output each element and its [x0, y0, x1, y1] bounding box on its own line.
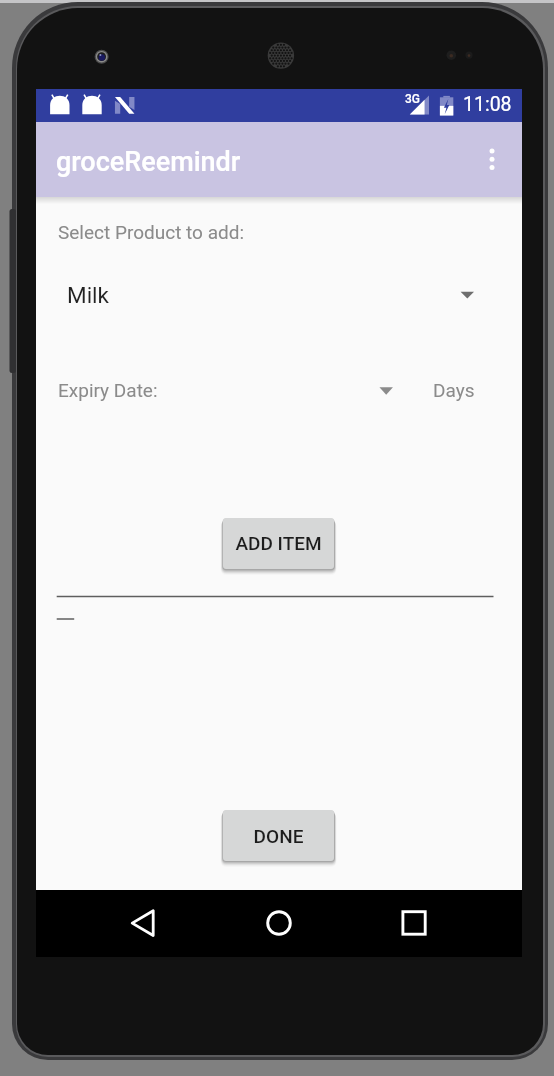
staticText: Milk — [67, 282, 109, 308]
staticText: Expiry Date: — [58, 379, 158, 401]
staticText: Days — [433, 379, 475, 401]
staticText: 3G — [405, 92, 420, 106]
button[interactable]: Back — [110, 890, 176, 957]
button[interactable]: More options — [466, 122, 518, 197]
staticText: 11:08 — [463, 93, 512, 116]
button[interactable]: Home — [246, 890, 312, 957]
staticText: Select Product to add: — [58, 221, 245, 243]
button[interactable]: Select expiry days — [360, 369, 414, 413]
staticText: DONE — [223, 825, 334, 847]
staticText: groceReemindr — [56, 146, 241, 178]
button[interactable]: Recent apps — [381, 890, 447, 957]
staticText: ADD ITEM — [223, 532, 334, 554]
button[interactable]: DONE — [223, 810, 334, 861]
button[interactable]: ADD ITEM — [223, 518, 334, 569]
button[interactable]: Select product — [57, 268, 493, 324]
